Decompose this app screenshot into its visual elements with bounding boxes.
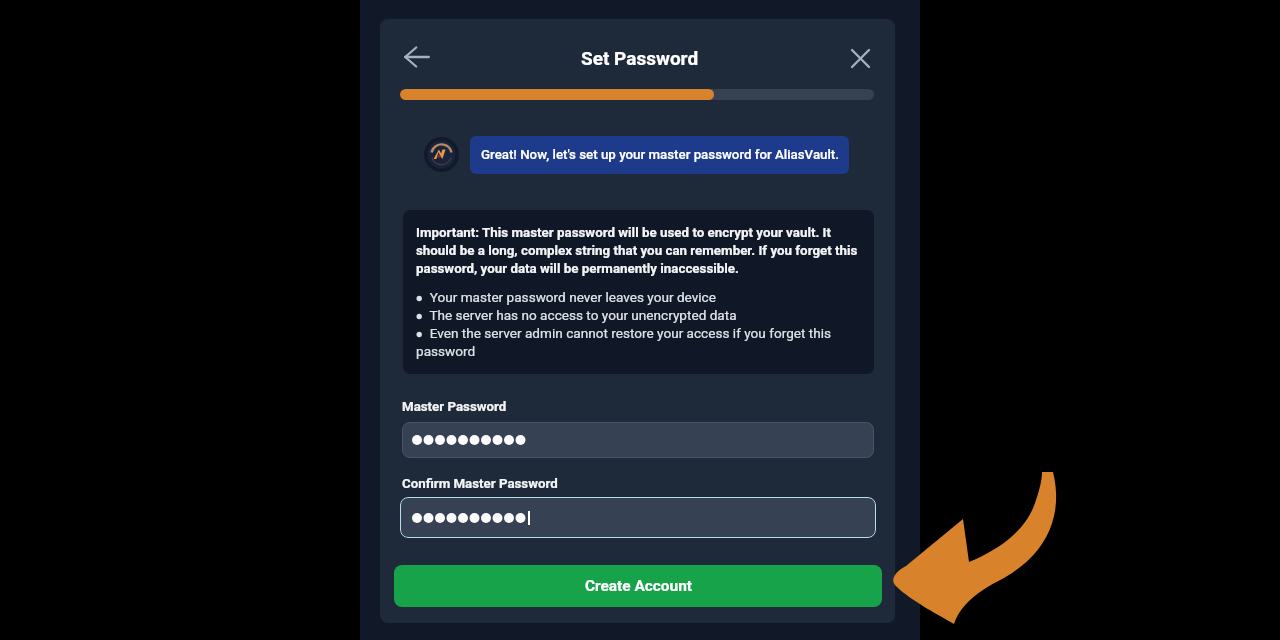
button[interactable]: Close: [838, 36, 882, 80]
button[interactable]: [400, 497, 876, 538]
button[interactable]: [402, 422, 874, 458]
staticText: Create Account: [585, 577, 692, 595]
staticText: Great! Now, let's set up your master pas…: [481, 147, 839, 163]
staticText: Set Password: [581, 44, 699, 70]
staticText: Master Password: [402, 397, 507, 415]
staticText: Your master password never leaves your d…: [416, 288, 865, 360]
button[interactable]: Back: [395, 35, 439, 79]
staticText: Confirm Master Password: [402, 474, 558, 492]
staticText: Important: This master password will be …: [416, 223, 865, 277]
button[interactable]: Create Account: [394, 565, 882, 607]
